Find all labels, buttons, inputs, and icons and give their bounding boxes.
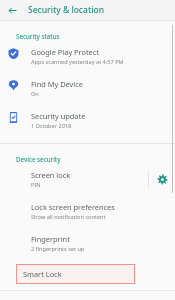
button[interactable]: Lock screen preferences: [0, 195, 175, 227]
staticText: Screen lock: [31, 170, 71, 180]
button[interactable]: Smart Lock: [16, 264, 135, 284]
button[interactable]: Find My Device: [0, 72, 175, 104]
staticText: Device security: [16, 155, 61, 163]
staticText: Apps scanned yesterday at 4:57 PM: [31, 58, 124, 66]
staticText: Find My Device: [31, 79, 83, 89]
button[interactable]: Fingerprint: [0, 227, 175, 259]
staticText: Security status: [16, 32, 60, 40]
staticText: Fingerprint: [31, 234, 70, 244]
staticText: On: [31, 90, 39, 98]
staticText: Security update: [31, 111, 86, 121]
staticText: PIN: [31, 181, 41, 189]
button[interactable]: Security update: [0, 104, 175, 136]
staticText: Smart Lock: [23, 269, 62, 279]
staticText: Lock screen preferences: [31, 202, 115, 212]
button[interactable]: Screen lock settings: [149, 166, 175, 192]
staticText: 2 fingerprints set up: [31, 245, 85, 253]
staticText: Google Play Protect: [31, 47, 99, 57]
staticText: 1 October 2018: [31, 122, 72, 130]
button[interactable]: Google Play Protect: [0, 40, 175, 72]
staticText: Show all notification content: [31, 213, 106, 221]
button[interactable]: Back: [5, 3, 19, 17]
staticText: Security & location: [28, 4, 104, 16]
button[interactable]: Screen lock: [0, 163, 148, 195]
